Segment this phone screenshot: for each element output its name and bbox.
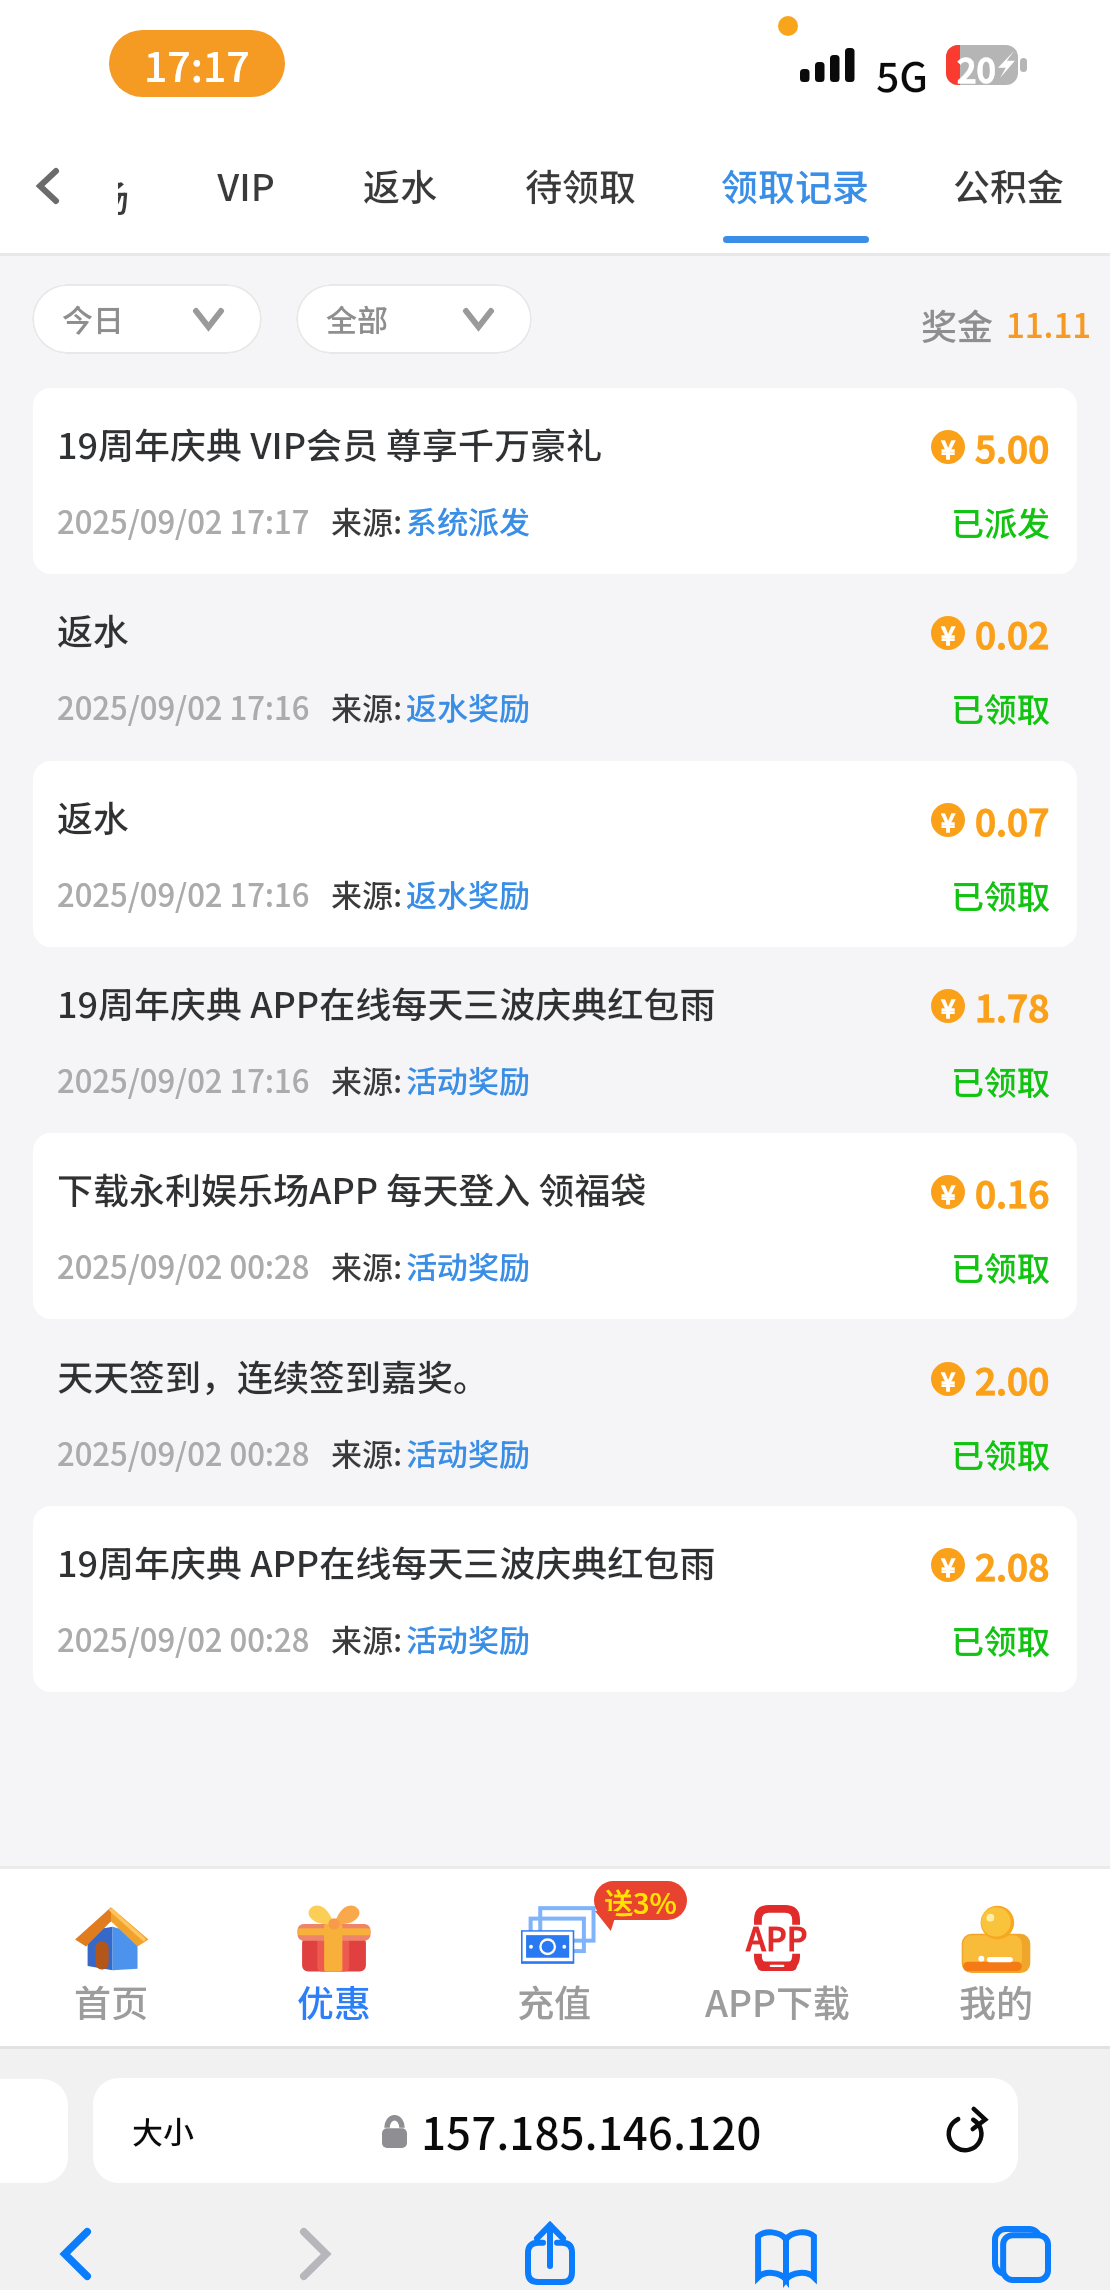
button[interactable]: Forward (260, 2210, 370, 2290)
button[interactable]: Share (495, 2209, 605, 2290)
button[interactable]: 19周年庆典 APP在线每天三波庆典红包雨 (33, 947, 1077, 1133)
staticText: 我的 (959, 1974, 1033, 2028)
button[interactable]: 今日 (32, 284, 262, 354)
staticText: ¥ (941, 1362, 956, 1396)
button[interactable]: VIP (206, 130, 286, 253)
staticText: VIP (217, 158, 275, 212)
staticText: 返水 (363, 158, 437, 212)
staticText: 活动奖励 (406, 1616, 530, 1661)
staticText: 19周年庆典 APP在线每天三波庆典红包雨 (57, 976, 716, 1028)
button[interactable]: Back (21, 2210, 131, 2290)
staticText: 2025/09/02 17:16 (57, 1057, 310, 1102)
staticText: 2025/09/02 00:28 (57, 1616, 310, 1661)
staticText: ¥ (941, 430, 956, 464)
button[interactable]: 返水 (358, 130, 442, 253)
staticText: 全部 (326, 296, 388, 341)
staticText: 0.16 (975, 1165, 1050, 1219)
staticText: 20 (957, 44, 996, 84)
staticText: 19周年庆典 VIP会员 尊享千万豪礼 (57, 417, 603, 469)
staticText: 来源: (331, 871, 403, 916)
staticText: 活动奖励 (406, 1430, 530, 1475)
staticText: 2025/09/02 00:28 (57, 1243, 310, 1288)
staticText: 天天签到，连续签到嘉奖。 (57, 1349, 490, 1401)
staticText: 1.78 (975, 979, 1050, 1033)
staticText: 优惠 (297, 1974, 371, 2028)
staticText: ¥ (941, 989, 956, 1023)
staticText: 已领取 (951, 1057, 1050, 1105)
staticText: 0.02 (975, 606, 1050, 660)
button[interactable]: 19周年庆典 APP在线每天三波庆典红包雨 (33, 1506, 1077, 1692)
button[interactable]: 天天签到，连续签到嘉奖。 (33, 1320, 1077, 1506)
staticText: 2.08 (975, 1538, 1050, 1592)
staticText: 2025/09/02 00:28 (57, 1430, 310, 1475)
staticText: 来源: (331, 1616, 403, 1661)
staticText: APP (746, 1914, 808, 1960)
staticText: 返水 (57, 790, 130, 842)
staticText: APP下载 (705, 1974, 850, 2028)
button[interactable]: 首页 (1, 1869, 221, 2046)
staticText: 来源: (331, 1057, 403, 1102)
staticText: 17:17 (144, 34, 250, 93)
staticText: 返水奖励 (406, 684, 530, 729)
staticText: 活动奖励 (406, 1243, 530, 1288)
staticText: ¥ (941, 1548, 956, 1582)
button[interactable]: Bookmarks (731, 2211, 841, 2290)
staticText: 今日 (62, 296, 124, 341)
staticText: 已领取 (951, 684, 1050, 732)
staticText: 来源: (331, 498, 403, 543)
staticText: 已派发 (951, 498, 1050, 546)
staticText: 充值 (517, 1974, 591, 2028)
staticText: 待领取 (525, 158, 636, 212)
staticText: 返水 (57, 603, 130, 655)
staticText: 5G (876, 44, 929, 103)
staticText: 系统派发 (406, 498, 530, 543)
button[interactable]: 19周年庆典 VIP会员 尊享千万豪礼 (33, 388, 1077, 574)
staticText: 0.07 (975, 793, 1050, 847)
staticText: 奖金 (921, 298, 994, 350)
staticText: 返水奖励 (406, 871, 530, 916)
staticText: 大小 (132, 2108, 194, 2153)
staticText: ¥ (941, 803, 956, 837)
button[interactable]: 领取记录 (717, 130, 873, 253)
staticText: 送3% (604, 1881, 677, 1919)
button[interactable]: 待领取 (519, 130, 641, 253)
button[interactable]: 我的 (886, 1869, 1106, 2046)
staticText: 首页 (74, 1974, 148, 2028)
staticText: 2025/09/02 17:17 (57, 498, 310, 543)
staticText: 活动奖励 (406, 1057, 530, 1102)
button[interactable]: 优惠 (224, 1869, 444, 2046)
staticText: 来源: (331, 1243, 403, 1288)
staticText: 已领取 (951, 871, 1050, 919)
button[interactable]: 场 (118, 130, 130, 253)
button[interactable]: APP (667, 1869, 887, 2046)
staticText: 157.185.146.120 (421, 2099, 762, 2163)
staticText: 19周年庆典 APP在线每天三波庆典红包雨 (57, 1535, 716, 1587)
staticText: ¥ (941, 1175, 956, 1209)
staticText: 下载永利娱乐场APP 每天登入 领福袋 (57, 1162, 647, 1214)
staticText: 公积金 (953, 158, 1064, 212)
button[interactable]: 全部 (296, 284, 532, 354)
staticText: 已领取 (951, 1430, 1050, 1478)
staticText: 2025/09/02 17:16 (57, 684, 310, 729)
button[interactable]: 返水 (33, 574, 1077, 760)
button[interactable]: Reload (937, 2101, 997, 2161)
button[interactable]: 送3% (444, 1869, 664, 2046)
staticText: ¥ (941, 616, 956, 650)
button[interactable]: 公积金 (947, 130, 1069, 253)
staticText: 来源: (331, 684, 403, 729)
button[interactable]: Back (5, 130, 89, 253)
staticText: 已领取 (951, 1243, 1050, 1291)
staticText: 11.11 (1006, 300, 1092, 348)
staticText: 2025/09/02 17:16 (57, 871, 310, 916)
staticText: 2.00 (975, 1352, 1050, 1406)
button[interactable]: 返水 (33, 761, 1077, 947)
button[interactable]: Tabs (966, 2210, 1076, 2290)
button[interactable]: 大小 (93, 2078, 1018, 2183)
staticText: 领取记录 (721, 158, 869, 212)
staticText: 已领取 (951, 1616, 1050, 1664)
staticText: 5.00 (975, 420, 1050, 474)
button[interactable]: 下载永利娱乐场APP 每天登入 领福袋 (33, 1133, 1077, 1319)
staticText: 来源: (331, 1430, 403, 1475)
